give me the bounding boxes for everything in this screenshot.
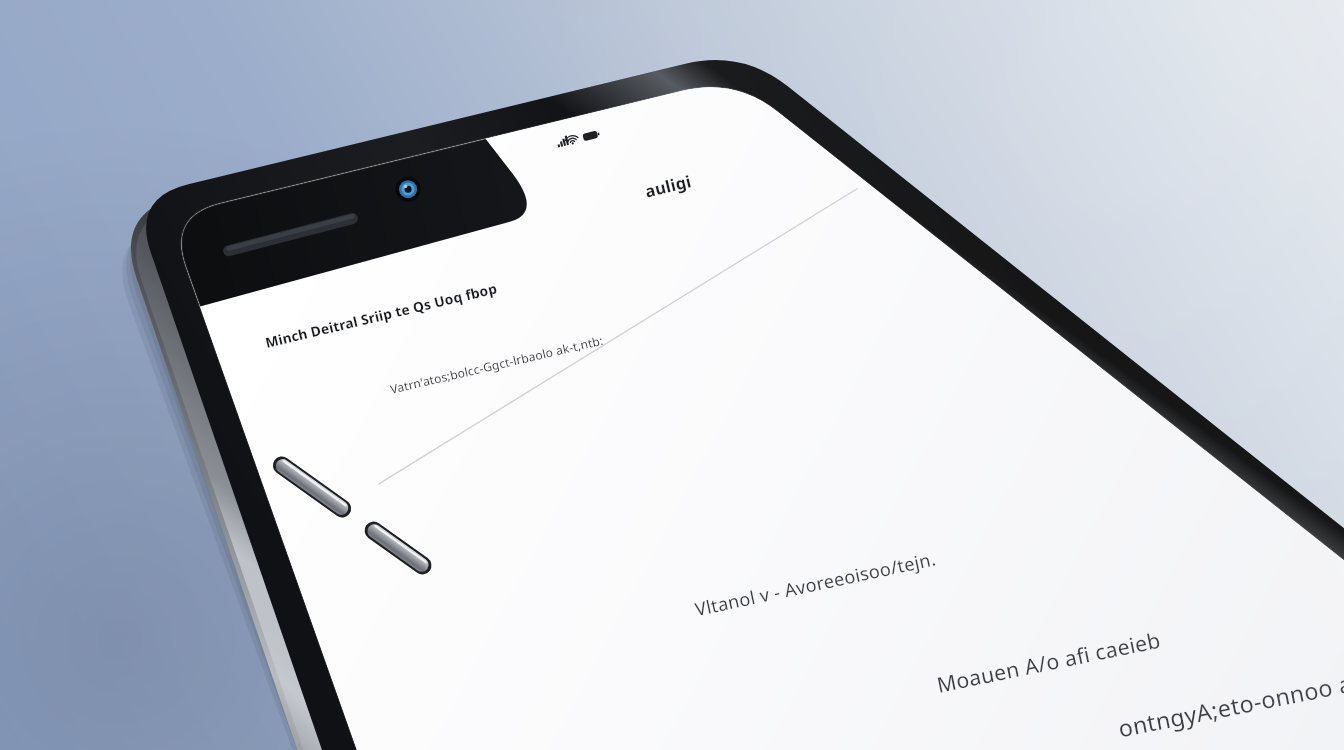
button[interactable]: Phone screen content bbox=[0, 0, 1344, 750]
